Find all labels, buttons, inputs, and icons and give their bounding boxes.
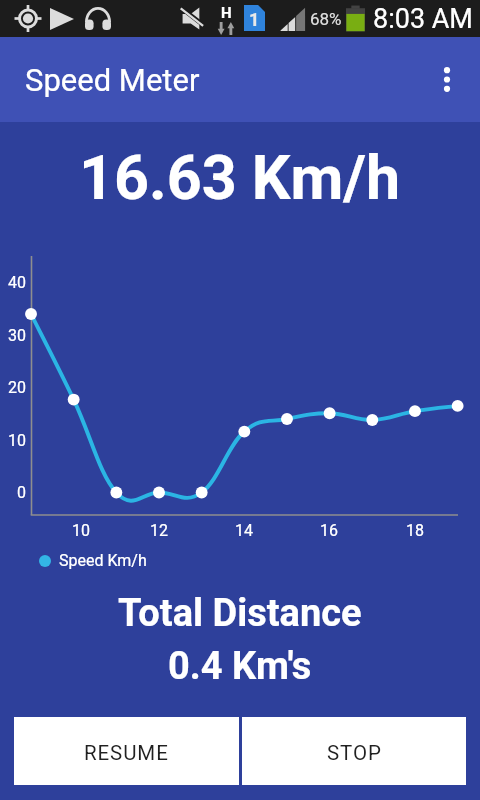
staticText: STOP [327,741,382,765]
staticText: 14 [235,521,253,540]
staticText: 0.4 Km's [168,644,312,689]
staticText: 0 [17,483,26,502]
staticText: 40 [8,273,26,292]
staticText: 1 [249,9,260,30]
staticText: 10 [72,521,90,540]
staticText: 30 [8,326,26,345]
staticText: 8:03 AM [373,3,473,35]
staticText: Total Distance [118,591,362,636]
staticText: Speed Meter [25,62,200,98]
staticText: 16.63 Km/h [79,142,401,213]
staticText: 18 [406,521,424,540]
staticText: 12 [150,521,168,540]
staticText: Speed Km/h [59,551,147,570]
staticText: 16 [320,521,338,540]
staticText: 68% [310,9,342,29]
button[interactable]: More options [413,37,480,122]
staticText: 20 [8,378,26,397]
staticText: RESUME [84,741,169,765]
staticText: H [221,4,232,22]
button[interactable]: STOP [242,717,466,785]
button[interactable]: RESUME [14,717,239,785]
staticText: 10 [8,431,26,450]
